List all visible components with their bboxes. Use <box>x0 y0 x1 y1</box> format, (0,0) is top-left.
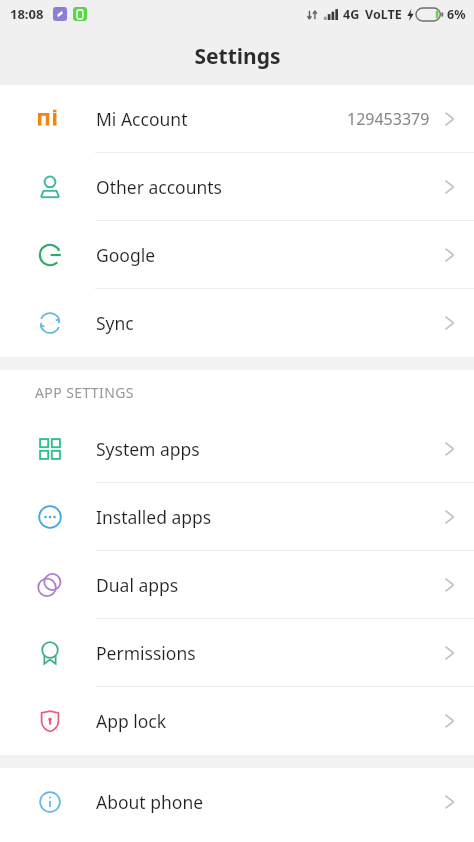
button[interactable]: Sync <box>0 289 474 357</box>
staticText: 18:08 <box>10 5 44 23</box>
button[interactable]: Dual apps <box>0 551 474 619</box>
staticText: Google <box>96 243 156 267</box>
staticText: Permissions <box>96 641 196 665</box>
staticText: VoLTE <box>365 6 402 23</box>
button[interactable]: Installed apps <box>0 483 474 551</box>
button[interactable]: Other accounts <box>0 153 474 221</box>
button[interactable]: About phone <box>0 768 474 836</box>
button[interactable]: App lock <box>0 687 474 755</box>
staticText: 6% <box>447 6 466 23</box>
staticText: APP SETTINGS <box>35 383 134 402</box>
staticText: Dual apps <box>96 573 179 597</box>
staticText: Other accounts <box>96 175 222 199</box>
staticText: Sync <box>96 311 134 335</box>
staticText: System apps <box>96 437 200 461</box>
button[interactable]: System apps <box>0 415 474 483</box>
staticText: 4G <box>343 6 360 23</box>
staticText: Settings <box>194 42 281 71</box>
staticText: Installed apps <box>96 505 212 529</box>
button[interactable]: Google <box>0 221 474 289</box>
button[interactable]: Permissions <box>0 619 474 687</box>
staticText: Mi Account <box>96 107 188 131</box>
button[interactable]: Mi Account <box>0 85 474 153</box>
staticText: About phone <box>96 790 204 814</box>
staticText: App lock <box>96 709 167 733</box>
staticText: 129453379 <box>347 108 430 130</box>
